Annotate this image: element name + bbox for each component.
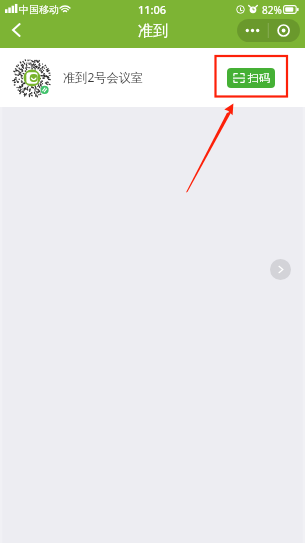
staticText: 准到2号会议室 xyxy=(63,69,144,86)
button[interactable]: More menu xyxy=(237,19,300,42)
button[interactable]: Back xyxy=(6,19,28,41)
staticText: 11:06 xyxy=(138,2,167,17)
staticText: 准到 xyxy=(138,22,168,41)
button[interactable]: Expand panel xyxy=(270,259,291,280)
staticText: 82% xyxy=(262,3,282,17)
button[interactable]: 扫码 xyxy=(227,68,275,88)
staticText: 扫码 xyxy=(248,71,270,85)
staticText: 中国移动 xyxy=(19,3,59,16)
